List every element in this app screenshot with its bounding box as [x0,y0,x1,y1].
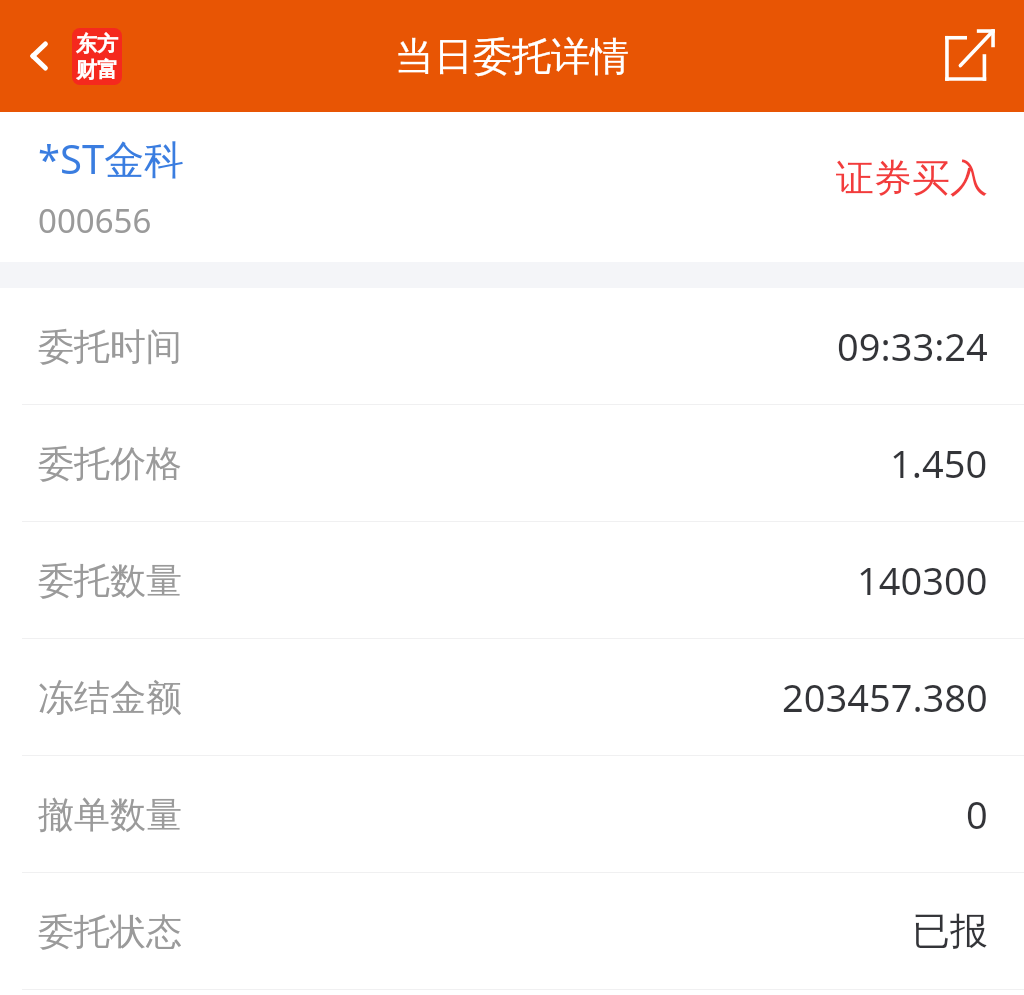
staticText: 东方 [76,31,118,57]
staticText: 证券买入 [836,154,988,202]
button[interactable]: East Money logo [72,28,122,85]
staticText: 已报 [912,907,988,955]
staticText: 0 [966,788,988,840]
staticText: 委托价格 [38,441,182,486]
button[interactable]: 撤单数量 [0,756,1024,872]
button[interactable]: Share [938,24,1002,88]
staticText: 09:33:24 [837,320,988,372]
button[interactable]: *ST金科 [0,112,1024,262]
button[interactable]: 委托状态 [0,873,1024,989]
button[interactable]: 委托数量 [0,522,1024,638]
staticText: 203457.380 [782,671,988,723]
staticText: 140300 [857,554,988,606]
staticText: 撤单数量 [38,792,182,837]
staticText: 000656 [38,198,152,243]
staticText: 当日委托详情 [395,32,629,81]
button[interactable]: 委托时间 [0,288,1024,404]
staticText: 1.450 [890,437,988,489]
staticText: *ST金科 [38,131,185,186]
button[interactable]: 冻结金额 [0,639,1024,755]
button[interactable]: Back [12,28,68,84]
button[interactable]: 委托价格 [0,405,1024,521]
staticText: 财富 [76,57,118,83]
staticText: 冻结金额 [38,675,182,720]
staticText: 委托数量 [38,558,182,603]
staticText: 委托时间 [38,324,182,369]
staticText: 委托状态 [38,909,182,954]
